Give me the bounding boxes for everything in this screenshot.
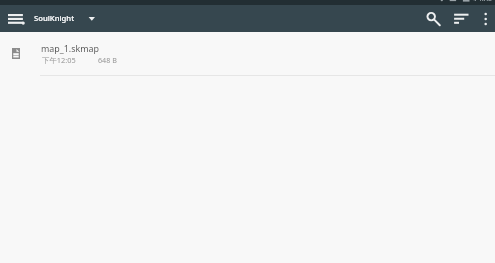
button[interactable]: Sort <box>448 6 472 30</box>
staticText: 12:05 <box>473 0 493 1</box>
button[interactable]: More options <box>474 6 495 30</box>
button[interactable]: Change storage location <box>82 8 101 29</box>
button[interactable]: Open navigation drawer <box>1 6 32 31</box>
button[interactable]: Search <box>420 6 444 30</box>
staticText: 下午12:05 <box>42 55 76 65</box>
staticText: SoulKnight <box>34 13 75 23</box>
staticText: map_1.skmap <box>41 42 99 54</box>
button[interactable]: map_1.skmap <box>0 32 495 76</box>
staticText: 648 B <box>98 55 117 65</box>
